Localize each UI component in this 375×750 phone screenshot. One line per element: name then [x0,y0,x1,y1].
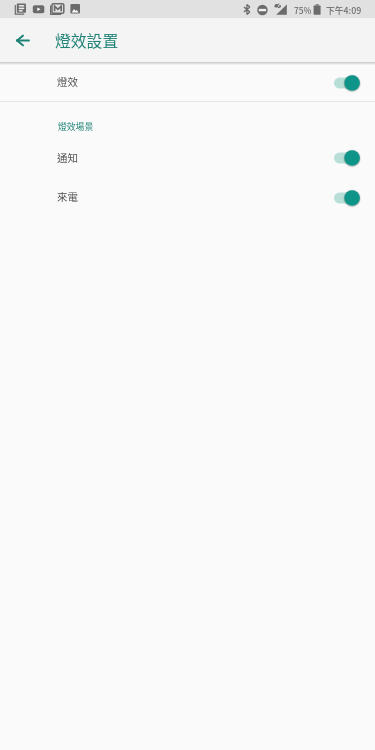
staticText: 燈效設置 [55,29,119,52]
button[interactable]: 燈效 [0,66,375,102]
button[interactable]: 通知 [0,138,375,177]
button[interactable]: Back [0,18,44,62]
staticText: 下午4:09 [326,4,362,17]
staticText: 來電 [57,189,78,204]
button[interactable]: 來電 [0,177,375,216]
staticText: 75% [294,4,312,16]
staticText: 通知 [57,150,78,165]
staticText: 燈效 [57,74,78,89]
staticText: 燈效場景 [58,120,94,133]
